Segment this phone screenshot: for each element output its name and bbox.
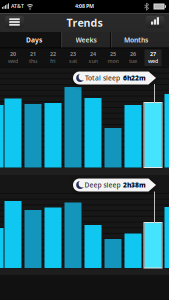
staticText: sat [69, 57, 77, 65]
button[interactable]: 26 [124, 50, 142, 65]
staticText: 6h22m [123, 74, 146, 82]
staticText: 2h38m [123, 181, 146, 189]
staticText: 24 [90, 50, 96, 57]
button[interactable]: Menu [5, 16, 24, 28]
button[interactable]: 20 [4, 50, 22, 65]
staticText: Trends [66, 15, 102, 30]
button[interactable]: Months [108, 32, 164, 48]
button[interactable]: Weeks [62, 32, 110, 48]
staticText: 21 [30, 50, 36, 57]
staticText: thu [29, 57, 37, 65]
staticText: sun [88, 57, 97, 65]
staticText: 25 [110, 50, 116, 57]
button[interactable]: 21 [24, 50, 42, 65]
button[interactable]: Days [5, 32, 63, 48]
staticText: fri [50, 57, 56, 65]
staticText: Deep sleep [84, 181, 120, 189]
staticText: 22 [50, 50, 56, 57]
staticText: Months [124, 36, 148, 44]
staticText: 27 [150, 50, 156, 57]
staticText: 23 [70, 50, 76, 57]
staticText: 20 [10, 50, 16, 57]
staticText: Weeks [75, 36, 96, 44]
button[interactable]: 27 [144, 50, 162, 65]
staticText: Days [26, 36, 42, 44]
staticText: 26 [130, 50, 136, 57]
staticText: tue [129, 57, 137, 65]
staticText: wed [8, 57, 18, 65]
staticText: 4:08 PM [75, 2, 94, 10]
staticText: mon [107, 57, 118, 65]
button[interactable]: 23 [64, 50, 82, 65]
button[interactable]: 22 [44, 50, 62, 65]
staticText: Total sleep [85, 74, 120, 82]
button[interactable]: 24 [84, 50, 102, 65]
staticText: AT&T [11, 2, 24, 10]
button[interactable]: Charts [145, 16, 164, 28]
staticText: wed [148, 57, 158, 65]
button[interactable]: 25 [104, 50, 122, 65]
